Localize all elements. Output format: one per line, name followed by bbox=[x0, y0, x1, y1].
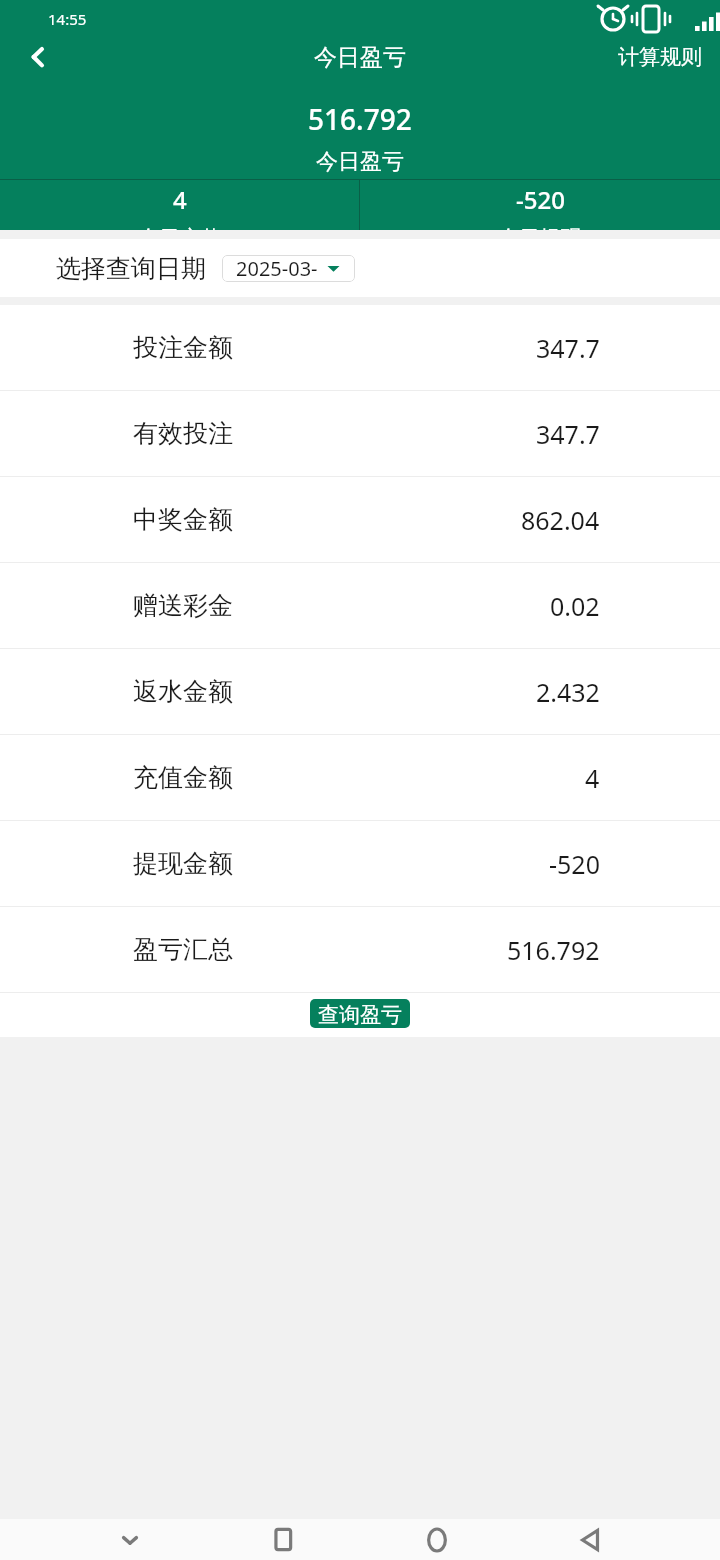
button[interactable]: Recent apps bbox=[260, 1519, 306, 1560]
button[interactable]: 返水金额 bbox=[0, 649, 720, 734]
staticText: -520 bbox=[516, 183, 565, 216]
button[interactable]: 充值金额 bbox=[0, 735, 720, 820]
button[interactable]: 中奖金额 bbox=[0, 477, 720, 562]
staticText: 今日盈亏 bbox=[314, 43, 406, 72]
staticText: -520 bbox=[549, 847, 600, 881]
staticText: 赠送彩金 bbox=[133, 590, 233, 621]
staticText: 提现金额 bbox=[133, 848, 233, 879]
button[interactable]: 盈亏汇总 bbox=[0, 907, 720, 992]
staticText: 返水金额 bbox=[133, 676, 233, 707]
staticText: 盈亏汇总 bbox=[133, 934, 233, 965]
button[interactable]: -520 bbox=[360, 179, 720, 230]
staticText: 计算规则 bbox=[618, 44, 702, 70]
button[interactable]: Back bbox=[567, 1519, 613, 1560]
button[interactable]: Back bbox=[14, 37, 62, 77]
button[interactable]: 投注金额 bbox=[0, 305, 720, 390]
staticText: 516.792 bbox=[308, 100, 412, 138]
staticText: 4 bbox=[173, 183, 187, 216]
button[interactable]: 2025-03-16 bbox=[222, 255, 355, 282]
staticText: 516.792 bbox=[507, 933, 600, 967]
staticText: 今日盈亏 bbox=[316, 148, 404, 176]
button[interactable]: 4 bbox=[0, 179, 359, 230]
button[interactable]: 查询盈亏明细 bbox=[310, 999, 410, 1028]
button[interactable]: 计算规则 bbox=[600, 38, 720, 76]
staticText: 2025-03-16 bbox=[236, 255, 326, 282]
staticText: 2.432 bbox=[536, 675, 600, 709]
staticText: 有效投注 bbox=[133, 418, 233, 449]
staticText: 347.7 bbox=[536, 417, 600, 451]
staticText: 选择查询日期 bbox=[56, 253, 206, 284]
staticText: 投注金额 bbox=[133, 332, 233, 363]
button[interactable]: Home bbox=[414, 1519, 460, 1560]
button[interactable]: 提现金额 bbox=[0, 821, 720, 906]
staticText: 862.04 bbox=[521, 503, 600, 537]
button[interactable]: 有效投注 bbox=[0, 391, 720, 476]
staticText: 今日充值 bbox=[138, 225, 222, 230]
button[interactable]: 赠送彩金 bbox=[0, 563, 720, 648]
staticText: 14:55 bbox=[48, 9, 87, 29]
staticText: 中奖金额 bbox=[133, 504, 233, 535]
staticText: 充值金额 bbox=[133, 762, 233, 793]
staticText: 0.02 bbox=[550, 589, 600, 623]
staticText: 4 bbox=[585, 761, 600, 795]
button[interactable]: Hide keyboard bbox=[107, 1519, 153, 1560]
staticText: 查询盈亏明细 bbox=[310, 1002, 410, 1028]
staticText: 今日提现 bbox=[498, 225, 582, 230]
staticText: 347.7 bbox=[536, 331, 600, 365]
